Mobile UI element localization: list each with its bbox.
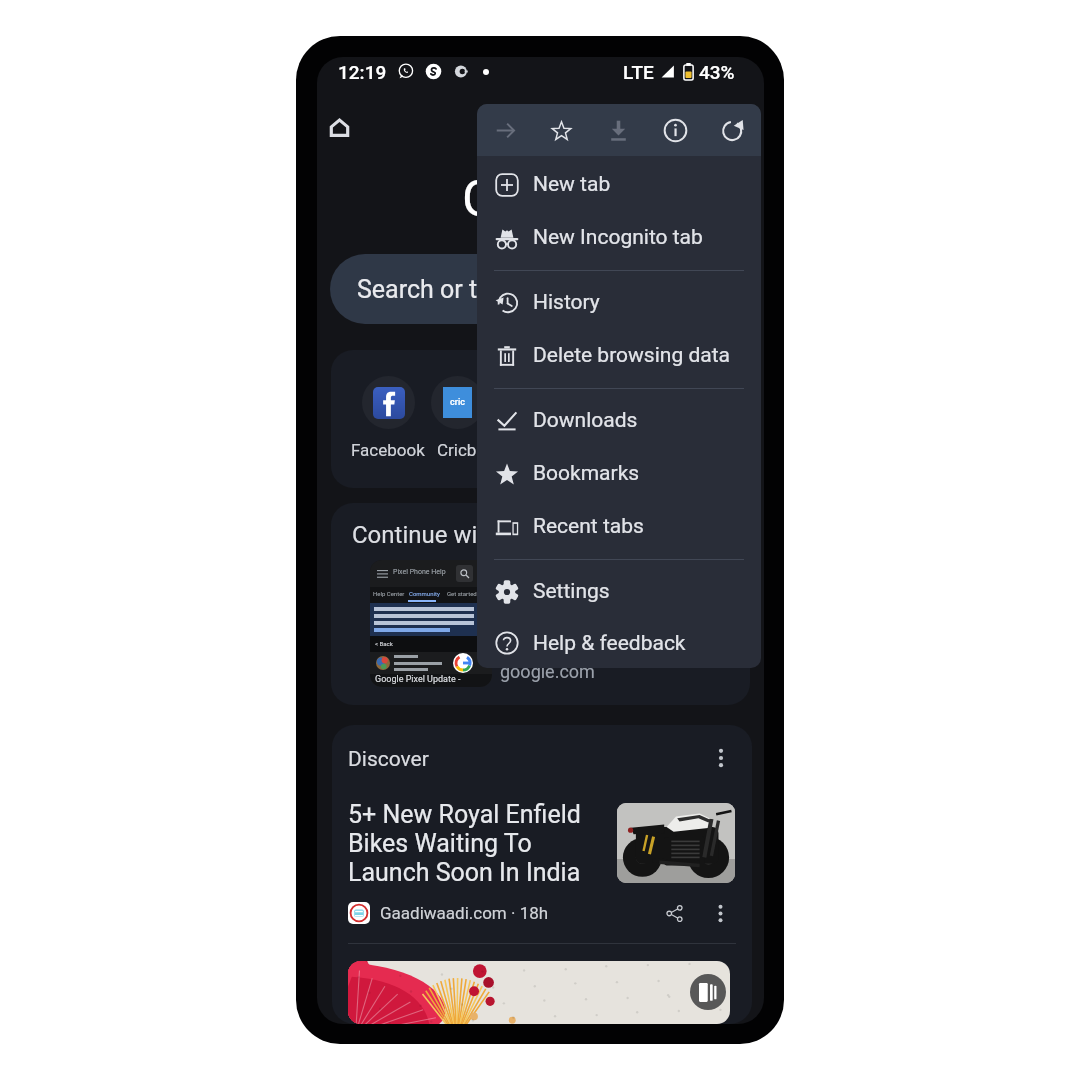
staticText: 5+ New Royal Enfield Bikes Waiting To La… bbox=[348, 800, 581, 887]
staticText: New tab bbox=[533, 172, 611, 197]
staticText: Discover bbox=[348, 747, 429, 772]
button[interactable]: Discover options bbox=[704, 741, 738, 775]
button[interactable]: Article options bbox=[704, 897, 736, 929]
staticText: Search or type URL bbox=[357, 275, 568, 304]
button[interactable]: cric bbox=[412, 350, 502, 488]
button[interactable]: Home bbox=[317, 105, 362, 150]
button[interactable]: Facebook bbox=[343, 350, 433, 488]
staticText: New Incognito tab bbox=[533, 225, 703, 250]
button[interactable]: History bbox=[477, 276, 761, 329]
button[interactable]: Help & feedback bbox=[477, 618, 761, 668]
staticText: LTE bbox=[623, 61, 654, 83]
button[interactable]: New tab bbox=[477, 158, 761, 211]
button[interactable]: Amazon bbox=[481, 350, 571, 488]
button[interactable]: Settings bbox=[477, 565, 761, 618]
button[interactable]: Download page bbox=[590, 104, 647, 156]
button[interactable]: Share bbox=[658, 897, 690, 929]
staticText: Help & feedback bbox=[533, 631, 686, 656]
staticText: Recent tabs bbox=[533, 514, 644, 539]
staticText: Pixel Phone Help bbox=[393, 568, 446, 576]
staticText: Help Center bbox=[373, 590, 405, 597]
staticText: cric bbox=[450, 397, 465, 408]
button[interactable]: Flipkart bbox=[550, 350, 640, 488]
staticText: Continue with bbox=[352, 521, 499, 549]
staticText: Facebook bbox=[351, 440, 425, 460]
staticText: Get started with bbox=[447, 590, 490, 597]
button[interactable]: Listen to article bbox=[690, 974, 726, 1010]
staticText: 12:19 bbox=[338, 61, 387, 83]
button[interactable]: New Incognito tab bbox=[477, 211, 761, 264]
button[interactable]: Recent tabs bbox=[477, 500, 761, 553]
staticText: Delete browsing data bbox=[533, 343, 730, 368]
staticText: Cricb bbox=[437, 440, 477, 460]
button[interactable]: Bookmark this page bbox=[533, 104, 590, 156]
staticText: Settings bbox=[533, 579, 610, 604]
staticText: Downloads bbox=[533, 408, 638, 433]
button[interactable]: Delete browsing data bbox=[477, 329, 761, 382]
button[interactable]: Page info bbox=[647, 104, 704, 156]
staticText: google.com bbox=[500, 661, 595, 682]
staticText: Google bbox=[462, 170, 620, 226]
staticText: Google Pixel Update - bbox=[375, 674, 461, 685]
staticText: History bbox=[533, 290, 600, 315]
button[interactable]: Forward bbox=[477, 104, 533, 156]
staticText: Bookmarks bbox=[533, 461, 640, 486]
staticText: Community bbox=[409, 590, 440, 597]
button[interactable]: Reload bbox=[704, 104, 761, 156]
staticText: 43% bbox=[699, 61, 735, 83]
button[interactable]: Downloads bbox=[477, 394, 761, 447]
staticText: Gaadiwaadi.com · 18h bbox=[380, 903, 549, 923]
button[interactable]: Search or type URL bbox=[330, 254, 751, 324]
button[interactable]: Bookmarks bbox=[477, 447, 761, 500]
staticText: < Back bbox=[375, 640, 393, 647]
